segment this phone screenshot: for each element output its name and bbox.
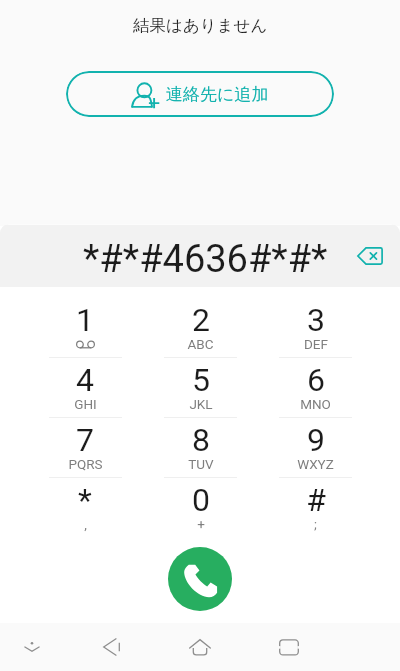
staticText: 3 — [307, 301, 325, 339]
button[interactable]: * — [27, 478, 143, 538]
staticText: 0 — [192, 481, 210, 519]
button[interactable]: 7 — [27, 418, 143, 478]
button[interactable]: 4 — [27, 358, 143, 418]
button[interactable]: 6 — [258, 358, 373, 418]
button[interactable]: 0 — [143, 478, 258, 538]
staticText: 結果はありません — [133, 15, 268, 36]
button[interactable]: Hide keyboard — [8, 623, 56, 671]
staticText: JKL — [189, 396, 213, 412]
staticText: # — [306, 481, 326, 519]
staticText: , — [84, 516, 87, 532]
staticText: WXYZ — [297, 456, 334, 472]
staticText: 1 — [76, 301, 94, 339]
staticText: MNO — [300, 396, 331, 412]
staticText: ABC — [187, 336, 214, 352]
button[interactable]: 3 — [258, 298, 373, 358]
button[interactable]: 2 — [143, 298, 258, 358]
button[interactable]: Backspace — [347, 233, 392, 278]
staticText: 9 — [307, 421, 325, 459]
button[interactable]: # — [258, 478, 373, 538]
button[interactable]: 1 — [27, 298, 143, 358]
staticText: TUV — [188, 456, 214, 472]
button[interactable]: Call — [168, 547, 232, 611]
button[interactable]: 8 — [143, 418, 258, 478]
button[interactable]: 9 — [258, 418, 373, 478]
staticText: 2 — [192, 301, 210, 339]
staticText: PQRS — [68, 456, 103, 472]
staticText: *#*#4636#*#* — [83, 237, 328, 282]
button[interactable]: Recents — [265, 623, 313, 671]
staticText: GHI — [74, 396, 97, 412]
staticText: ; — [314, 516, 317, 532]
staticText: 連絡先に追加 — [166, 84, 269, 105]
button[interactable]: 5 — [143, 358, 258, 418]
staticText: 7 — [76, 421, 94, 459]
staticText: 4 — [76, 361, 94, 399]
button[interactable]: Home — [176, 623, 224, 671]
button[interactable]: Back — [87, 623, 135, 671]
staticText: DEF — [304, 336, 328, 352]
staticText: 8 — [192, 421, 210, 459]
button[interactable]: 連絡先に追加 — [66, 71, 334, 117]
staticText: 5 — [192, 361, 210, 399]
staticText: + — [197, 516, 205, 532]
staticText: * — [78, 481, 92, 519]
staticText: 6 — [307, 361, 325, 399]
